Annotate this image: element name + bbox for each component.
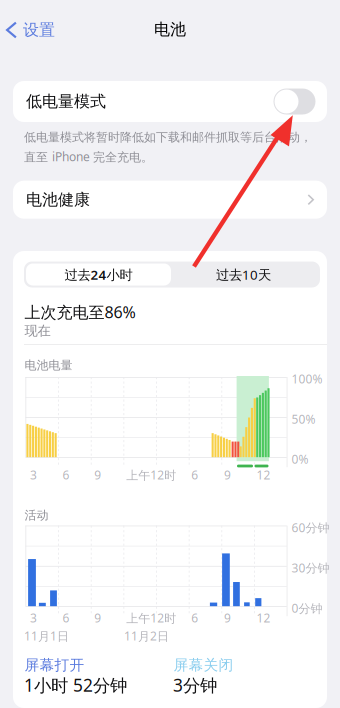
staticText: 上午12时: [126, 467, 176, 483]
staticText: 低电量模式: [26, 92, 106, 111]
staticText: 现在: [25, 322, 51, 339]
staticText: 6: [191, 467, 198, 483]
button[interactable]: 设置: [0, 11, 55, 49]
button[interactable]: 电池健康: [13, 181, 327, 219]
button[interactable]: 过去24小时: [26, 263, 171, 285]
button[interactable]: 低电量模式: [13, 81, 327, 122]
staticText: 电池: [154, 20, 186, 39]
staticText: 电池电量: [25, 358, 73, 373]
staticText: 6: [62, 467, 69, 483]
staticText: 3: [30, 610, 37, 626]
staticText: 3分钟: [173, 673, 217, 696]
staticText: 3: [30, 467, 37, 483]
staticText: 1小时 52分钟: [24, 673, 127, 696]
staticText: 设置: [23, 20, 55, 40]
staticText: 30分钟: [291, 560, 329, 576]
staticText: 60分钟: [291, 520, 329, 535]
staticText: 上午12时: [126, 610, 176, 626]
staticText: 低电量模式将暂时降低如下载和邮件抓取等后台活动，: [24, 130, 312, 145]
staticText: 12: [256, 610, 270, 626]
staticText: 6: [191, 610, 198, 626]
staticText: 活动: [25, 508, 49, 523]
staticText: 11月1日: [24, 628, 69, 644]
staticText: 0分钟: [291, 600, 322, 616]
staticText: 过去10天: [216, 266, 271, 283]
staticText: 12: [256, 467, 270, 483]
staticText: 电池健康: [26, 190, 90, 209]
staticText: 过去24小时: [64, 266, 132, 283]
staticText: 0%: [291, 451, 308, 467]
staticText: 9: [224, 610, 231, 626]
staticText: 100%: [291, 371, 322, 387]
staticText: 屏幕打开: [25, 656, 85, 674]
staticText: 9: [224, 467, 231, 483]
staticText: 9: [94, 467, 101, 483]
staticText: 11月2日: [124, 628, 169, 644]
staticText: 上次充电至86%: [25, 301, 136, 323]
staticText: 屏幕关闭: [173, 656, 233, 674]
staticText: 直至 iPhone 完全充电。: [24, 149, 153, 165]
staticText: 50%: [291, 411, 315, 427]
button[interactable]: 过去10天: [171, 263, 316, 285]
staticText: 6: [62, 610, 69, 626]
staticText: 9: [94, 610, 101, 626]
